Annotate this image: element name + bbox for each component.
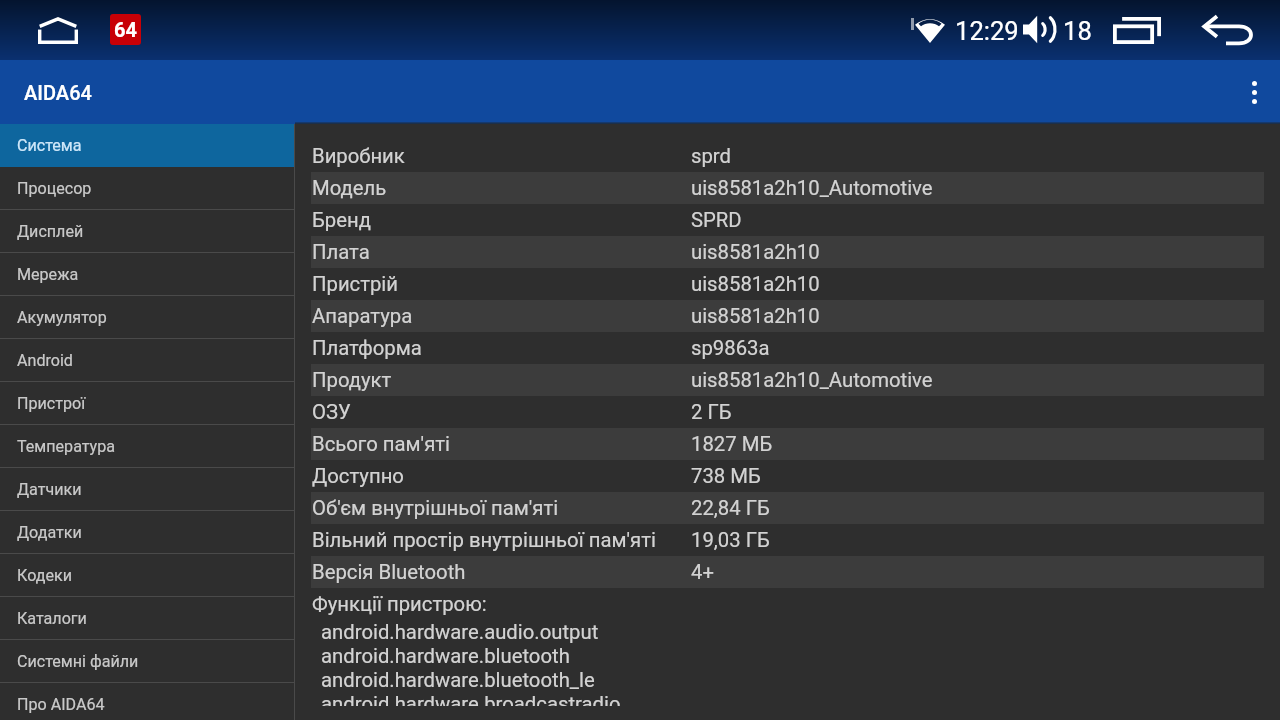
- button[interactable]: Системні файли: [0, 640, 295, 683]
- button[interactable]: Всього пам'яті: [295, 428, 1280, 460]
- staticText: Температура: [17, 437, 116, 456]
- button[interactable]: Пристрій: [295, 268, 1280, 300]
- staticText: Кодеки: [17, 566, 72, 585]
- staticText: Акумулятор: [17, 308, 107, 327]
- staticText: Мережа: [17, 265, 79, 284]
- staticText: 4+: [691, 560, 714, 584]
- button[interactable]: Про AIDA64: [0, 683, 295, 720]
- staticText: Система: [17, 136, 82, 155]
- button[interactable]: ОЗУ: [295, 396, 1280, 428]
- staticText: uis8581a2h10: [691, 304, 820, 328]
- button[interactable]: Процесор: [0, 167, 295, 210]
- staticText: Продукт: [312, 368, 392, 392]
- staticText: Версія Bluetooth: [312, 560, 466, 584]
- button[interactable]: Версія Bluetooth: [295, 556, 1280, 588]
- button[interactable]: Вільний простір внутрішньої пам'яті: [295, 524, 1280, 556]
- staticText: Модель: [312, 176, 387, 200]
- staticText: android.hardware.broadcastradio: [321, 692, 621, 706]
- staticText: Android: [17, 351, 73, 370]
- button[interactable]: Кодеки: [0, 554, 295, 597]
- staticText: uis8581a2h10_Automotive: [691, 176, 933, 200]
- staticText: Про AIDA64: [17, 695, 105, 714]
- button[interactable]: Бренд: [295, 204, 1280, 236]
- button[interactable]: Температура: [0, 425, 295, 468]
- button[interactable]: More options: [1228, 60, 1280, 124]
- staticText: Вільний простір внутрішньої пам'яті: [312, 528, 656, 552]
- staticText: 12:29: [955, 16, 1019, 46]
- staticText: sp9863a: [691, 336, 770, 360]
- other: Wi-Fi: [915, 17, 945, 43]
- staticText: 1827 МБ: [691, 432, 773, 456]
- button[interactable]: Мережа: [0, 253, 295, 296]
- staticText: ОЗУ: [312, 400, 351, 424]
- staticText: Функції пристрою:: [312, 592, 487, 616]
- button[interactable]: Каталоги: [0, 597, 295, 640]
- staticText: 18: [1063, 16, 1092, 46]
- button[interactable]: Дисплей: [0, 210, 295, 253]
- button[interactable]: Об'єм внутрішньої пам'яті: [295, 492, 1280, 524]
- button[interactable]: Плата: [295, 236, 1280, 268]
- button[interactable]: Android: [0, 339, 295, 382]
- staticText: Пристрої: [17, 394, 86, 413]
- staticText: Всього пам'яті: [312, 432, 450, 456]
- button[interactable]: Акумулятор: [0, 296, 295, 339]
- staticText: uis8581a2h10: [691, 272, 820, 296]
- button[interactable]: Апаратура: [295, 300, 1280, 332]
- staticText: 2 ГБ: [691, 400, 732, 424]
- staticText: Об'єм внутрішньої пам'яті: [312, 496, 559, 520]
- staticText: Датчики: [17, 480, 82, 499]
- staticText: Процесор: [17, 179, 92, 198]
- staticText: sprd: [691, 144, 732, 168]
- staticText: Плата: [312, 240, 370, 264]
- button[interactable]: Система: [0, 124, 295, 167]
- staticText: Додатки: [17, 523, 82, 542]
- button[interactable]: Доступно: [295, 460, 1280, 492]
- staticText: Доступно: [312, 464, 404, 488]
- staticText: android.hardware.audio.output: [321, 620, 599, 644]
- button[interactable]: Продукт: [295, 364, 1280, 396]
- button[interactable]: Додатки: [0, 511, 295, 554]
- staticText: Апаратура: [312, 304, 413, 328]
- button[interactable]: Платформа: [295, 332, 1280, 364]
- staticText: SPRD: [691, 208, 742, 232]
- staticText: android.hardware.bluetooth_le: [321, 668, 595, 692]
- staticText: Виробник: [312, 144, 405, 168]
- staticText: Бренд: [312, 208, 371, 232]
- staticText: Системні файли: [17, 652, 139, 671]
- staticText: Дисплей: [17, 222, 84, 241]
- staticText: Платформа: [312, 336, 422, 360]
- button[interactable]: Модель: [295, 172, 1280, 204]
- button[interactable]: Виробник: [295, 140, 1280, 172]
- staticText: Каталоги: [17, 609, 87, 628]
- button[interactable]: Датчики: [0, 468, 295, 511]
- staticText: uis8581a2h10_Automotive: [691, 368, 933, 392]
- other: Recents: [1113, 16, 1161, 44]
- staticText: 22,84 ГБ: [691, 496, 770, 520]
- staticText: AIDA64: [24, 81, 92, 104]
- staticText: Пристрій: [312, 272, 399, 296]
- button[interactable]: Пристрої: [0, 382, 295, 425]
- staticText: 64: [114, 18, 137, 41]
- staticText: android.hardware.bluetooth: [321, 644, 570, 668]
- other: Back: [1203, 13, 1253, 45]
- other: Home: [38, 17, 78, 44]
- staticText: 19,03 ГБ: [691, 528, 770, 552]
- staticText: uis8581a2h10: [691, 240, 820, 264]
- staticText: 738 МБ: [691, 464, 761, 488]
